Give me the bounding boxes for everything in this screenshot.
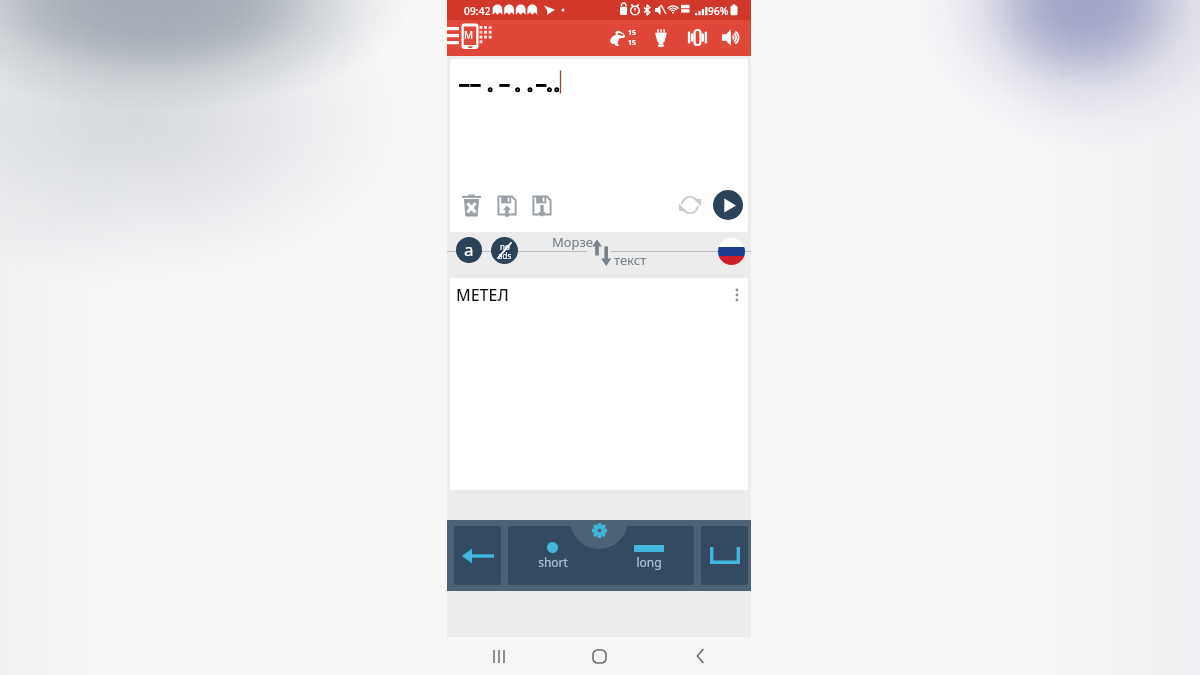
button[interactable]: Remove ads [491,237,518,264]
button[interactable]: Space [701,526,748,585]
button[interactable]: Speed [604,20,644,56]
button[interactable]: Recent apps [447,637,549,675]
staticText: short [535,554,571,570]
staticText: 96% [708,4,729,18]
staticText: 09:42 [464,4,491,18]
staticText: МЕТЕЛ [456,284,509,306]
button[interactable]: Home [549,637,650,675]
button[interactable]: Vibrate [678,20,714,56]
button[interactable]: long [613,526,685,585]
staticText: M [464,28,474,42]
button[interactable]: Back [650,637,751,675]
button[interactable]: Menu [447,20,493,56]
staticText: no [500,241,510,252]
button[interactable]: Морзе [547,233,647,273]
button[interactable]: Delete [456,190,486,220]
button[interactable]: Settings [585,520,613,544]
staticText: текст [614,251,647,269]
button[interactable]: short [517,526,589,585]
button[interactable]: Sound [714,20,750,56]
button[interactable]: Play [713,190,743,220]
button[interactable]: More options [726,284,748,306]
button[interactable]: Language [718,238,745,265]
staticText: Морзе [552,233,593,251]
button[interactable]: Backspace [454,526,501,585]
button[interactable]: Font size [456,237,482,263]
staticText: ads [498,250,512,261]
button[interactable]: Light [644,20,678,56]
staticText: a [464,238,474,261]
staticText: 15 [628,38,637,48]
button[interactable]: Repeat [675,190,705,220]
button[interactable]: Load [492,190,522,220]
staticText: 15 [628,28,637,38]
button[interactable]: Save [527,190,557,220]
staticText: long [631,554,667,570]
